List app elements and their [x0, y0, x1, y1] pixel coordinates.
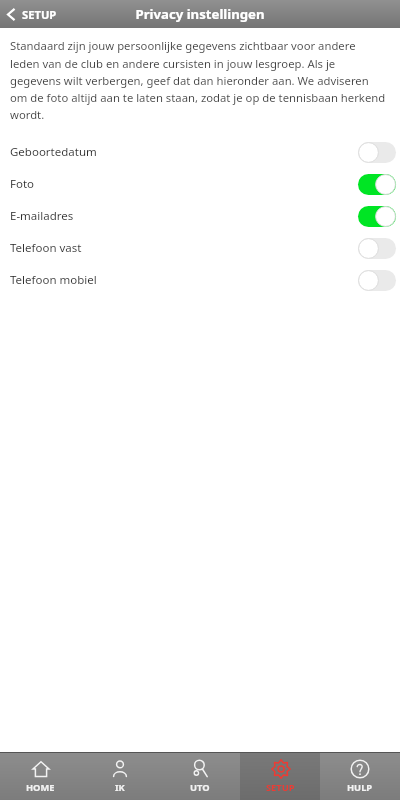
staticText: HOME [26, 781, 55, 794]
staticText: Standaard zijn jouw persoonlijke gegeven… [10, 38, 387, 122]
staticText: Privacy instellingen [0, 5, 400, 23]
staticText: SETUP [22, 7, 57, 22]
staticText: Geboortedatum [10, 144, 97, 160]
button[interactable]: IK [80, 753, 160, 800]
staticText: Telefoon vast [10, 240, 82, 256]
button[interactable]: SETUP [0, 0, 65, 28]
button[interactable]: E-mailadres [0, 200, 400, 232]
button[interactable]: UTO [160, 753, 240, 800]
button[interactable]: Foto [0, 168, 400, 200]
staticText: SETUP [266, 781, 295, 794]
button[interactable]: Telefoon mobiel [0, 264, 400, 296]
staticText: IK [115, 781, 125, 794]
staticText: HULP [347, 781, 373, 794]
staticText: UTO [190, 781, 210, 794]
staticText: E-mailadres [10, 208, 74, 224]
button[interactable]: HULP [320, 753, 400, 800]
staticText: Telefoon mobiel [10, 272, 97, 288]
button[interactable]: HOME [0, 753, 80, 800]
button[interactable]: Telefoon vast [0, 232, 400, 264]
staticText: Foto [10, 176, 35, 192]
button[interactable]: SETUP [240, 753, 320, 800]
button[interactable]: Geboortedatum [0, 136, 400, 168]
